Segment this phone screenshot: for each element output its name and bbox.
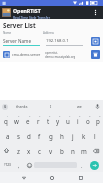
staticText: u [66,117,70,125]
staticText: , [18,162,20,169]
button[interactable]: Home [46,172,57,183]
staticText: thanks [16,104,28,109]
staticText: 4 [39,115,41,118]
staticText: c [38,147,41,155]
button[interactable]: . [77,159,87,171]
staticText: we [77,104,82,109]
button[interactable]: 5 [43,113,53,128]
button[interactable]: , [14,159,24,171]
staticText: g [49,132,53,140]
button[interactable]: Delete server [91,50,100,59]
staticText: o [86,117,90,125]
button[interactable]: ?123 [1,159,14,171]
button[interactable]: Add server [91,37,100,46]
button[interactable]: z [13,143,23,158]
staticText: OpenRTiST [13,7,41,14]
staticText: t [47,117,50,125]
staticText: x [27,147,31,155]
button[interactable]: l [89,128,100,143]
staticText: 7 [69,115,71,118]
staticText: k [82,132,86,140]
staticText: b [60,147,64,155]
button[interactable]: s [13,128,23,143]
staticText: Server Name [3,38,31,44]
staticText: i [77,117,79,125]
staticText: d [27,132,31,140]
button[interactable]: a [3,128,13,143]
staticText: Address [43,31,86,35]
staticText: e [26,117,30,125]
button[interactable]: n [67,143,78,158]
staticText: p [96,117,100,125]
staticText: v [49,147,53,155]
button[interactable]: d [23,128,34,143]
staticText: 9 [89,115,91,118]
button[interactable]: 3 [22,113,33,128]
staticText: 2 [18,115,20,118]
staticText: r [37,117,40,125]
staticText: 8 [79,115,81,118]
button[interactable]: Backspace [89,143,103,158]
button[interactable]: h [56,128,67,143]
button[interactable]: k [78,128,89,143]
button[interactable]: 0 [93,113,103,128]
button[interactable]: m [78,143,89,158]
button[interactable]: f [34,128,45,143]
button[interactable]: 2 [11,113,22,128]
staticText: l [94,132,96,140]
button[interactable]: More options [90,7,101,18]
button[interactable]: Emoji [24,159,34,171]
staticText: . [81,162,83,169]
staticText: w [14,117,19,125]
button[interactable]: b [56,143,67,158]
staticText: y [56,117,60,125]
button[interactable]: Voice input [94,103,101,110]
button[interactable]: x [23,143,34,158]
button[interactable]: 7 [63,113,73,128]
staticText: q [4,117,8,125]
staticText: Name [3,31,43,35]
staticText: 1 [7,115,9,118]
staticText: openrtist- demo.cmusatyalab.org [45,51,89,58]
button[interactable]: v [45,143,56,158]
button[interactable]: Google [2,104,8,110]
staticText: f [38,132,41,140]
button[interactable]: 6 [53,113,63,128]
staticText: Real-Time Style Transfer [13,15,51,19]
staticText: a [6,132,10,140]
staticText: I [50,104,52,109]
staticText: Server List [3,21,36,29]
button[interactable]: 4 [33,113,43,128]
staticText: 5 [49,115,51,118]
button[interactable]: Recents [75,172,86,183]
button[interactable]: c [34,143,45,158]
button[interactable]: Back [18,172,29,183]
staticText: G [4,105,7,109]
staticText: 3 [29,115,31,118]
staticText: n [71,147,75,155]
staticText: 6 [59,115,61,118]
staticText: j [72,132,74,140]
button[interactable]: 8 [73,113,83,128]
button[interactable]: j [67,128,78,143]
staticText: ?123 [4,163,11,167]
staticText: z [17,147,20,155]
button[interactable]: 1 [0,113,11,128]
staticText: s [17,132,20,140]
staticText: m [81,147,87,155]
button[interactable]: Shift [0,143,13,158]
button[interactable]: Enter [90,161,99,170]
button[interactable]: cmu-demo-server [3,49,100,60]
staticText: h [60,132,64,140]
staticText: cmu-demo-server [12,52,43,57]
button[interactable]: g [45,128,56,143]
staticText: 192.168.0.1 [46,38,69,44]
button[interactable]: 9 [83,113,93,128]
staticText: 0 [99,115,101,118]
